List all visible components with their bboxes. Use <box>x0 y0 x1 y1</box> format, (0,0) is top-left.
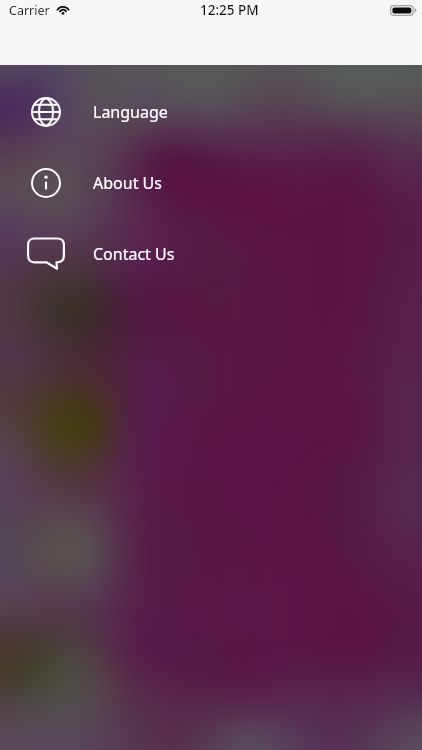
staticText: Contact Us <box>93 243 175 265</box>
button[interactable]: Contact Us <box>0 218 422 289</box>
staticText: About Us <box>93 172 162 194</box>
staticText: Carrier <box>9 2 50 19</box>
staticText: Language <box>93 101 168 123</box>
staticText: 12:25 PM <box>200 1 259 19</box>
button[interactable]: Language <box>0 76 422 147</box>
button[interactable]: About Us <box>0 147 422 218</box>
